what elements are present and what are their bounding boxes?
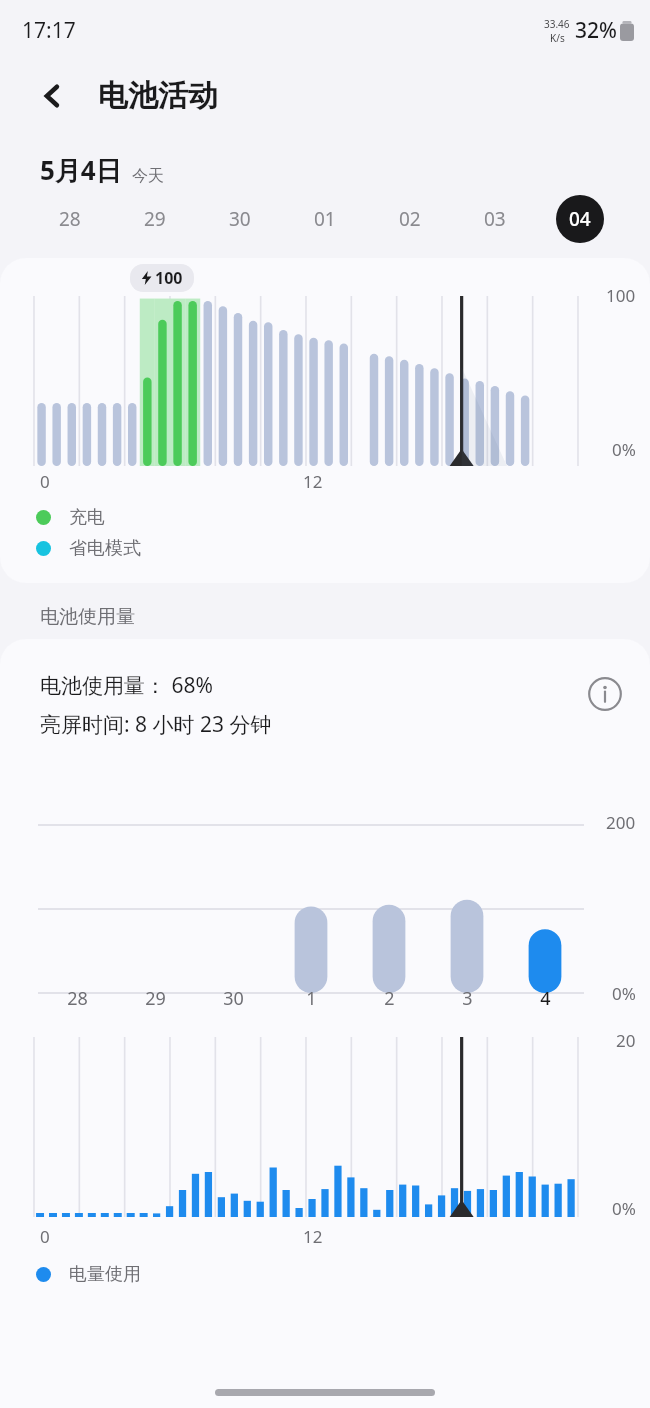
staticText: 今天 — [132, 166, 164, 186]
staticText: 0% — [612, 1197, 636, 1220]
staticText: 12 — [303, 470, 323, 493]
staticText: 电量使用 — [69, 1263, 141, 1286]
button[interactable]: 01 — [282, 192, 367, 246]
staticText: 30 — [229, 206, 251, 232]
staticText: 0 — [40, 1225, 50, 1248]
button[interactable]: Info — [582, 671, 628, 717]
button[interactable]: 30 — [197, 192, 282, 246]
staticText: 0% — [612, 982, 636, 1005]
staticText: 01 — [314, 206, 336, 232]
staticText: 32% — [575, 16, 617, 45]
button[interactable]: 03 — [452, 192, 537, 246]
staticText: 28 — [67, 986, 88, 1011]
staticText: 12 — [303, 1225, 323, 1248]
button[interactable]: Back — [30, 73, 76, 119]
button[interactable]: 04 — [537, 192, 622, 246]
staticText: 亮屏时间: 8 小时 23 分钟 — [40, 710, 272, 739]
staticText: 02 — [399, 206, 421, 232]
staticText: 100 — [155, 267, 183, 289]
staticText: 电池使用量： 68% — [40, 671, 213, 700]
staticText: 2 — [384, 986, 395, 1011]
staticText: 17:17 — [22, 16, 76, 45]
staticText: 100 — [606, 284, 636, 307]
button[interactable]: 02 — [367, 192, 452, 246]
staticText: 0 — [40, 470, 50, 493]
button[interactable]: 100 — [0, 258, 650, 583]
staticText: 03 — [484, 206, 506, 232]
button[interactable]: 29 — [112, 192, 197, 246]
staticText: 充电 — [69, 506, 105, 529]
staticText: 1 — [306, 986, 317, 1011]
button[interactable]: 28 — [28, 192, 112, 246]
staticText: 0% — [612, 438, 636, 461]
staticText: 29 — [145, 986, 166, 1011]
staticText: 29 — [144, 206, 166, 232]
staticText: 20 — [616, 1029, 636, 1052]
staticText: 电池活动 — [98, 77, 218, 115]
staticText: 04 — [569, 206, 591, 232]
staticText: K/s — [550, 31, 565, 45]
staticText: 省电模式 — [69, 537, 141, 560]
staticText: 30 — [223, 986, 244, 1011]
staticText: 28 — [59, 206, 81, 232]
staticText: 电池使用量 — [40, 605, 135, 629]
staticText: 3 — [462, 986, 473, 1011]
staticText: 4 — [540, 986, 551, 1011]
staticText: 5月4日 — [40, 152, 122, 188]
staticText: 33.46 — [544, 17, 570, 31]
staticText: 200 — [606, 811, 636, 834]
